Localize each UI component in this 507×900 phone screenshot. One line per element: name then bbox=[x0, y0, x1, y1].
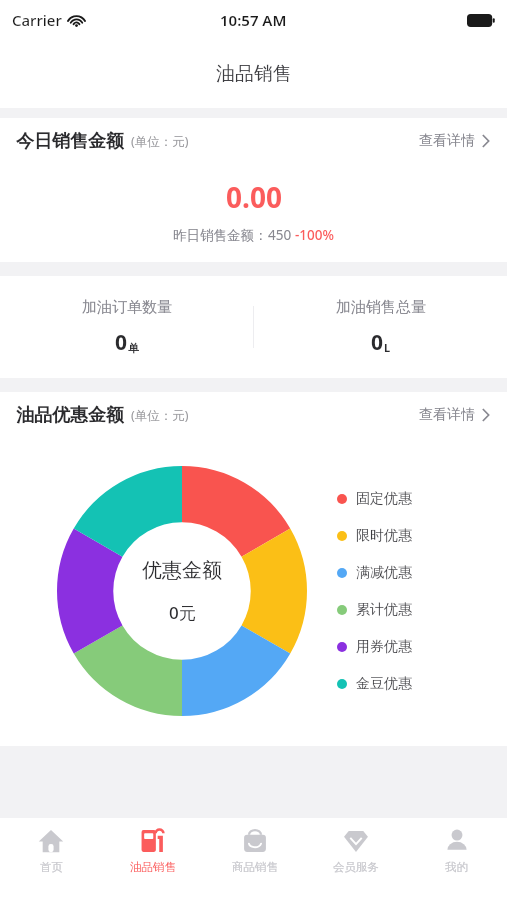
button[interactable]: 油品销售 bbox=[102, 818, 204, 900]
staticText: 油品优惠金额 bbox=[16, 404, 124, 427]
staticText: 今日销售金额 bbox=[16, 130, 124, 153]
other: 油品销售 bbox=[140, 828, 166, 854]
other: 我的 bbox=[444, 828, 470, 854]
staticText: 0元 bbox=[169, 601, 196, 624]
staticText: 金豆优惠 bbox=[356, 675, 412, 693]
staticText: 单 bbox=[128, 341, 139, 355]
staticText: Carrier bbox=[12, 10, 62, 30]
staticText: 我的 bbox=[445, 860, 468, 874]
staticText: 商品销售 bbox=[232, 860, 278, 874]
staticText: -100% bbox=[295, 226, 335, 244]
button[interactable]: 加油订单数量 bbox=[0, 298, 253, 357]
other: 首页 bbox=[38, 828, 64, 854]
staticText: 昨日销售金额： bbox=[173, 227, 268, 244]
staticText: 用券优惠 bbox=[356, 638, 412, 656]
staticText: 450 bbox=[268, 226, 295, 244]
staticText: 查看详情 bbox=[419, 406, 475, 424]
staticText: 0.00 bbox=[226, 178, 282, 216]
staticText: 0 bbox=[371, 328, 384, 357]
staticText: 满减优惠 bbox=[356, 564, 412, 582]
staticText: 加油订单数量 bbox=[82, 298, 172, 317]
staticText: 累计优惠 bbox=[356, 601, 412, 619]
button[interactable]: 会员服务 bbox=[305, 818, 406, 900]
staticText: (单位：元) bbox=[131, 133, 189, 150]
staticText: 首页 bbox=[40, 860, 63, 874]
staticText: (单位：元) bbox=[131, 407, 189, 424]
staticText: 会员服务 bbox=[333, 860, 379, 874]
button[interactable]: 首页 bbox=[0, 818, 102, 900]
button[interactable]: 查看详情 bbox=[417, 126, 491, 156]
staticText: 加油销售总量 bbox=[336, 298, 426, 317]
other: 商品销售 bbox=[242, 828, 268, 854]
other: 会员服务 bbox=[343, 828, 369, 854]
staticText: L bbox=[384, 340, 391, 355]
button[interactable]: 商品销售 bbox=[204, 818, 305, 900]
staticText: 油品销售 bbox=[216, 62, 292, 86]
button[interactable]: 查看详情 bbox=[417, 400, 491, 430]
staticText: 10:57 AM bbox=[220, 10, 287, 30]
button[interactable]: 加油销售总量 bbox=[254, 298, 507, 357]
staticText: 限时优惠 bbox=[356, 527, 412, 545]
button[interactable]: 我的 bbox=[406, 818, 507, 900]
staticText: 固定优惠 bbox=[356, 490, 412, 508]
staticText: 优惠金额 bbox=[142, 558, 222, 583]
staticText: 0 bbox=[115, 328, 128, 357]
staticText: 查看详情 bbox=[419, 132, 475, 150]
staticText: 油品销售 bbox=[130, 860, 176, 874]
